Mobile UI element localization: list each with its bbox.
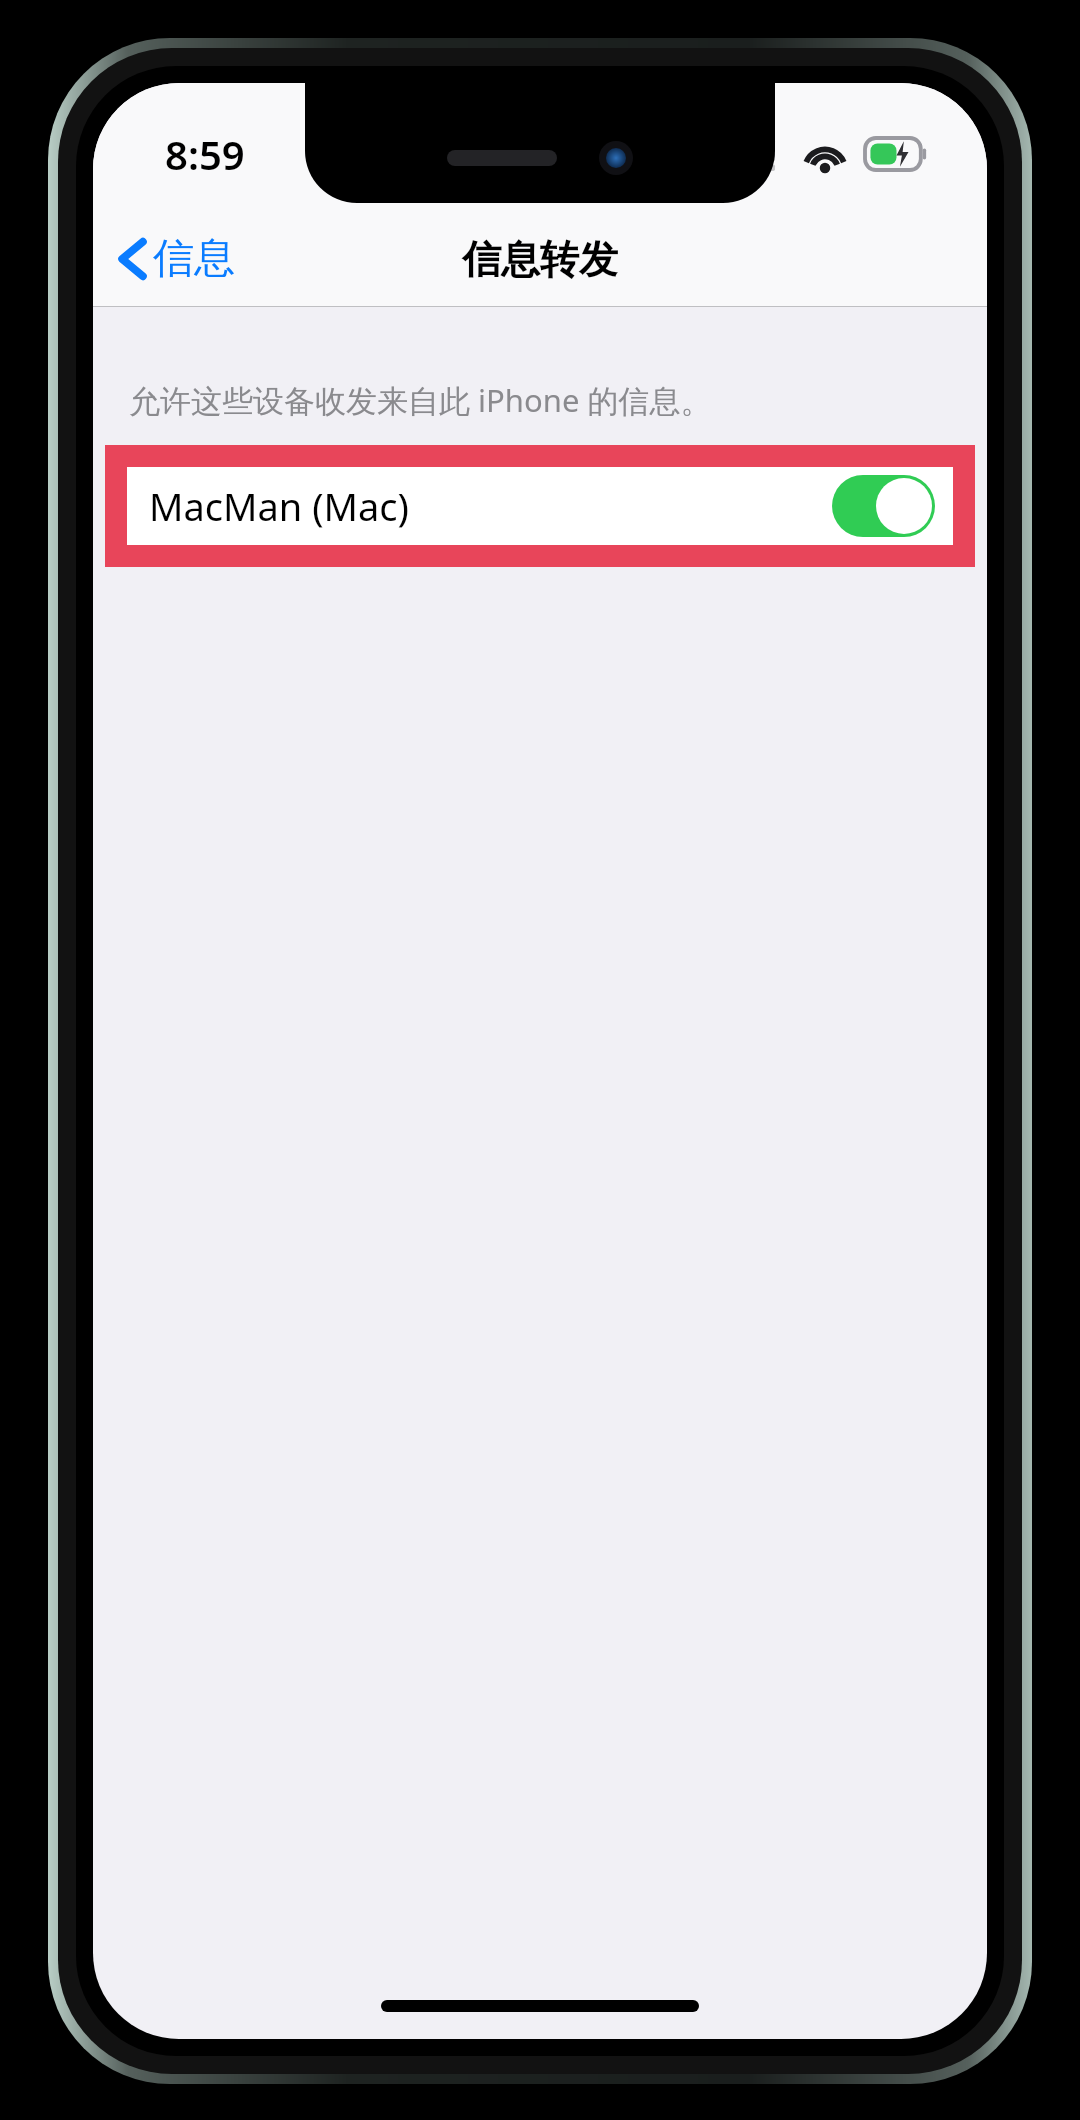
staticText: MacMan (Mac) [149, 480, 409, 532]
staticText: 允许这些设备收发来自此 iPhone 的信息。 [129, 379, 712, 421]
button[interactable]: 信息 [93, 223, 251, 295]
button[interactable]: 信息转发开关 [832, 475, 935, 537]
staticText: 信息转发 [462, 235, 618, 284]
button[interactable]: MacMan (Mac) [127, 467, 953, 545]
staticText: 8:59 [165, 127, 245, 181]
staticText: 信息 [153, 233, 235, 285]
